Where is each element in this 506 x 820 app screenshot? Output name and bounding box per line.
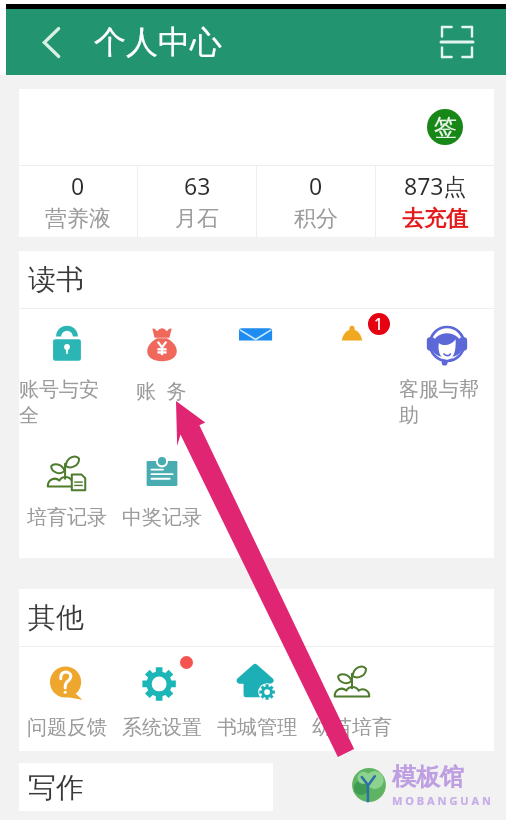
staticText: 中奖记录: [122, 505, 202, 530]
button[interactable]: 873点: [376, 166, 494, 237]
staticText: 系统设置: [122, 715, 202, 740]
staticText: 其他: [28, 600, 84, 635]
staticText: 签: [434, 113, 457, 142]
button[interactable]: 系统设置: [114, 658, 209, 740]
button[interactable]: 账号与安全: [19, 320, 114, 428]
staticText: 0: [309, 170, 323, 201]
button[interactable]: 培育记录: [19, 448, 114, 530]
staticText: 营养液: [45, 205, 111, 233]
staticText: 幼苗培育: [312, 715, 392, 740]
staticText: 书城管理: [217, 715, 297, 740]
staticText: 账 务: [136, 377, 187, 404]
staticText: 63: [184, 170, 211, 201]
button[interactable]: 0: [19, 166, 137, 237]
button[interactable]: 幼苗培育: [304, 658, 399, 740]
staticText: 账号与安全: [19, 377, 114, 428]
button[interactable]: 账 务: [114, 320, 209, 404]
staticText: MOBANGUAN: [392, 793, 494, 808]
button[interactable]: 0: [257, 166, 375, 237]
staticText: 个人中心: [94, 22, 222, 62]
button[interactable]: 客服与帮助: [399, 320, 494, 428]
staticText: 0: [71, 170, 85, 201]
button[interactable]: 63: [138, 166, 256, 237]
staticText: 模板馆: [392, 762, 464, 792]
button[interactable]: Scan QR code: [436, 21, 478, 63]
button[interactable]: 书城管理: [209, 658, 304, 740]
staticText: 客服与帮助: [399, 377, 494, 428]
staticText: 问题反馈: [27, 715, 107, 740]
staticText: 去充值: [402, 205, 468, 233]
button[interactable]: 问题反馈: [19, 658, 114, 740]
staticText: 月石: [175, 205, 219, 233]
button[interactable]: Back: [31, 22, 71, 62]
staticText: 1: [374, 313, 384, 335]
staticText: 读书: [28, 262, 84, 297]
button[interactable]: [209, 320, 304, 404]
button[interactable]: Sign in: [427, 109, 463, 145]
staticText: 873点: [404, 170, 467, 201]
staticText: 积分: [294, 205, 338, 233]
staticText: 写作: [28, 770, 84, 805]
button[interactable]: 中奖记录: [114, 448, 209, 530]
staticText: 培育记录: [27, 505, 107, 530]
button[interactable]: 1: [304, 320, 399, 404]
